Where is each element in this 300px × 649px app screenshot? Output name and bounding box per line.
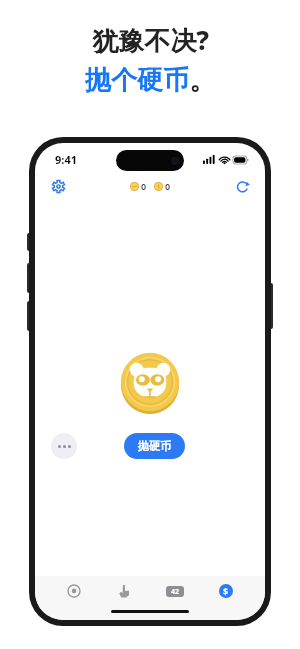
button[interactable]: 抛硬币 [124,433,185,459]
button[interactable]: Settings [47,175,69,197]
staticText: 抛个硬币 [85,64,189,97]
staticText: 。 [189,64,215,97]
staticText: 抛硬币 [138,439,171,453]
staticText: 9:41 [55,152,77,167]
staticText: $ [223,585,229,597]
staticText: 42 [171,587,180,597]
staticText: 0 [141,180,147,192]
button[interactable]: Reset [231,175,253,197]
button[interactable]: More options [51,433,77,459]
button[interactable]: Flip target [49,576,99,606]
staticText: 0 [165,180,171,192]
button[interactable]: 42 flips [149,576,200,606]
button[interactable]: Tap [99,576,149,606]
staticText: 犹豫不决? [92,22,209,58]
button[interactable]: Purchase [200,576,251,606]
